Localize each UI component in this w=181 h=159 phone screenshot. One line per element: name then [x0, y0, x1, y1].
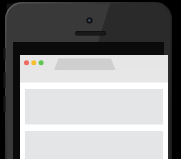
button[interactable]: Phone mockup with browser window: [0, 0, 181, 159]
